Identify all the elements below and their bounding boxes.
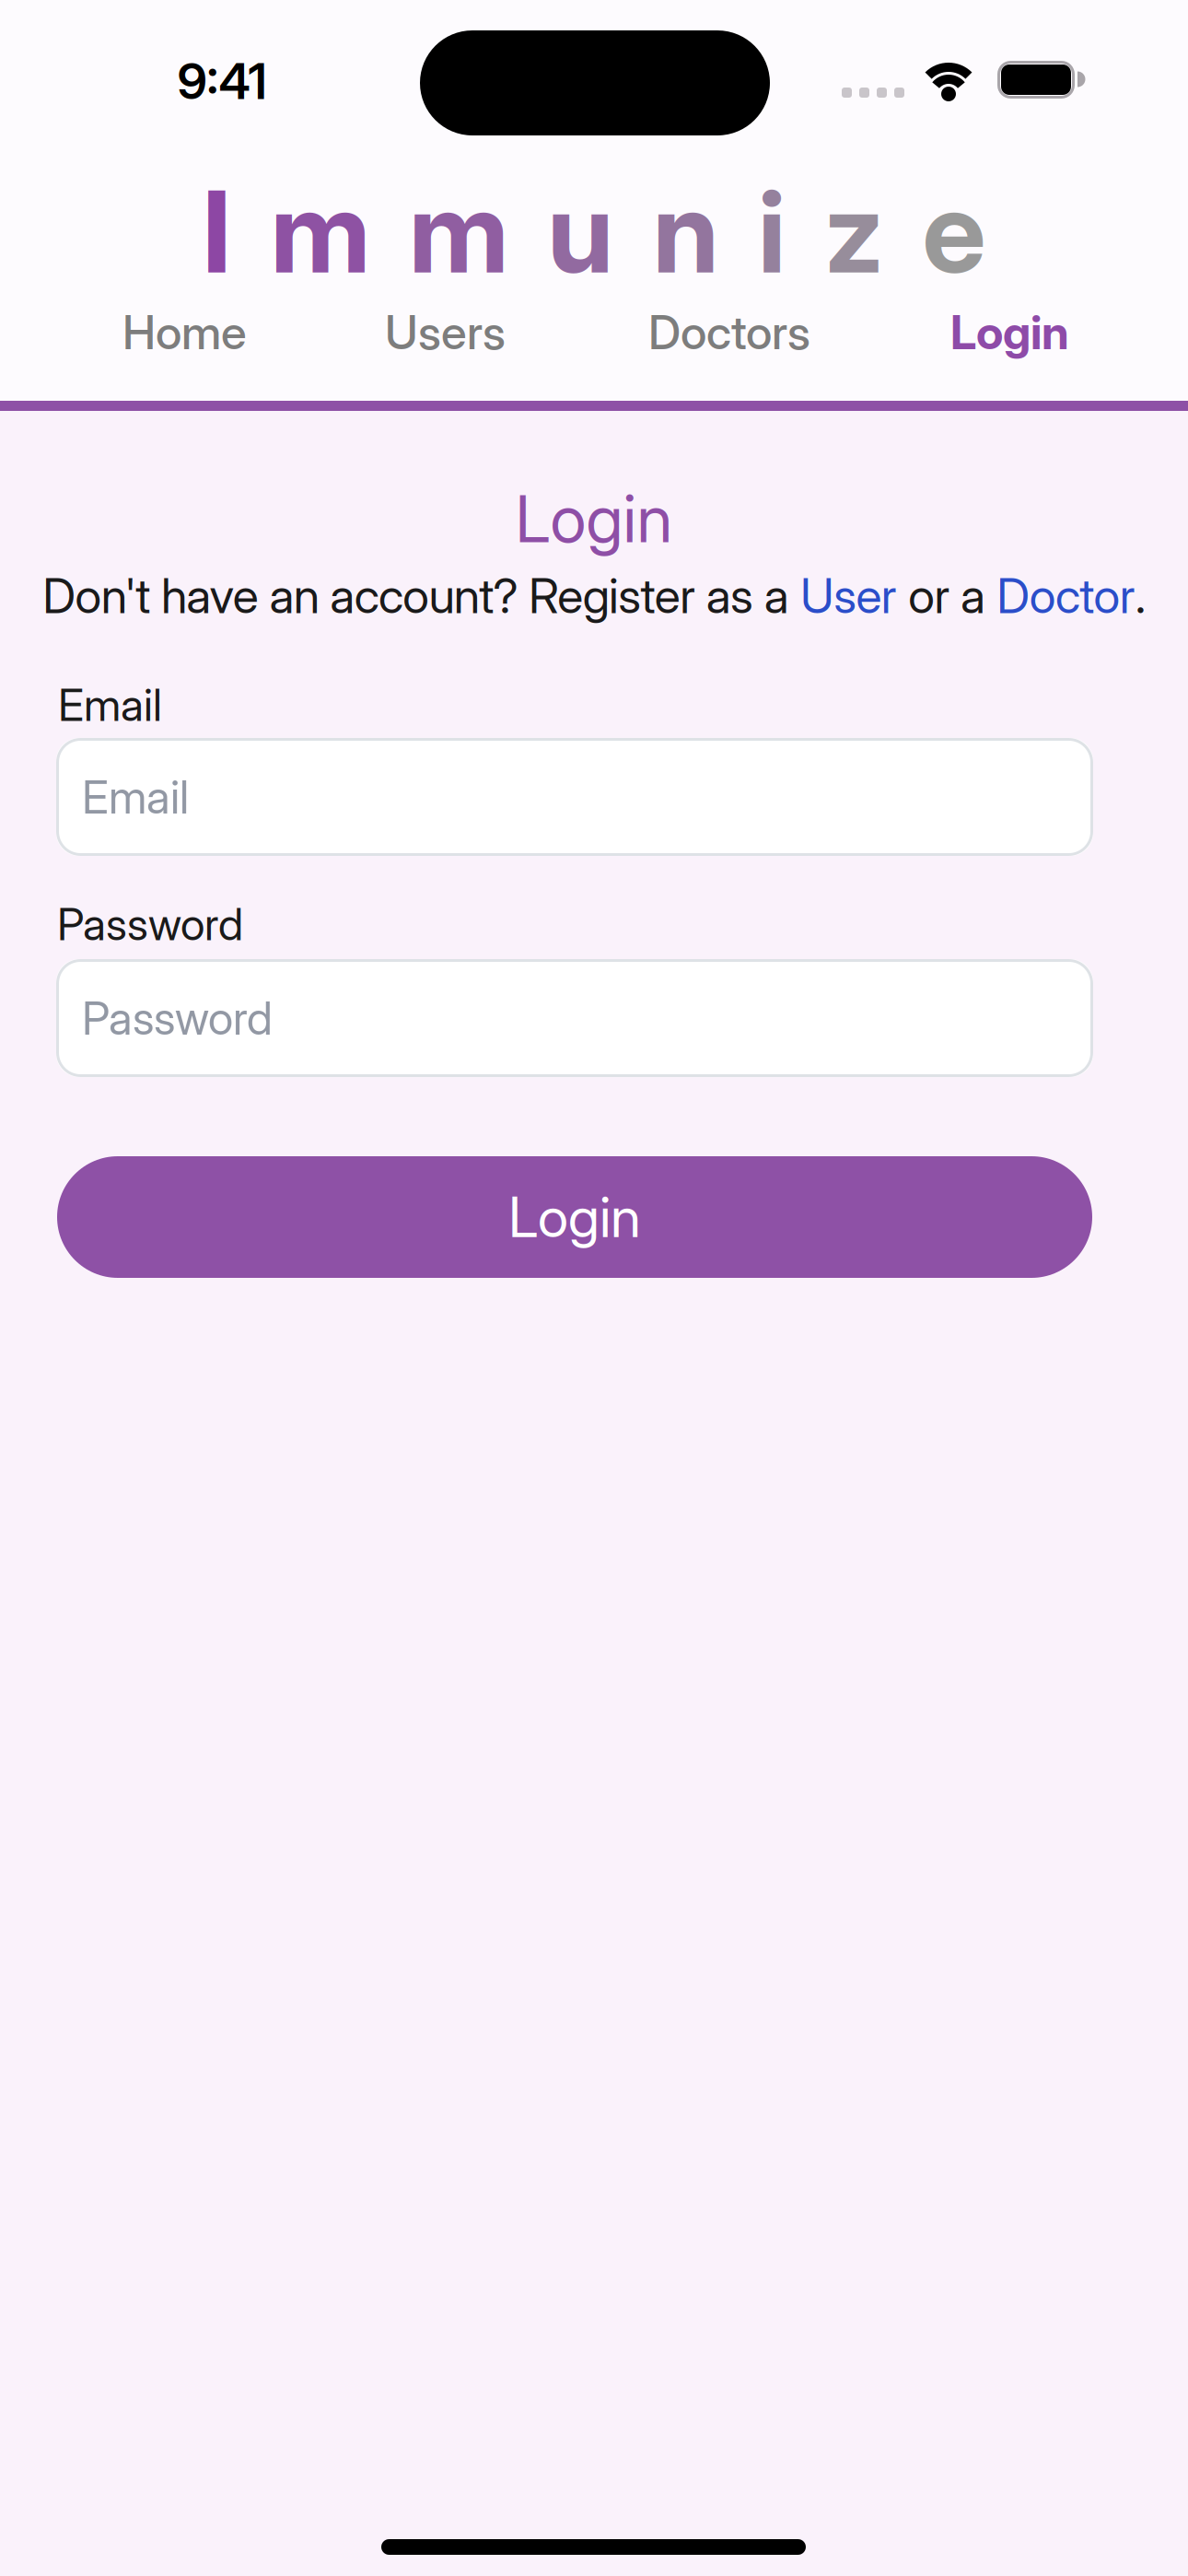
staticText: Home [122, 304, 247, 361]
button[interactable]: Login [57, 1156, 1092, 1278]
staticText: u [547, 163, 614, 300]
staticText: I [202, 163, 232, 300]
staticText: Don't have an account? Register as a [43, 567, 800, 625]
staticText: Doctor [997, 567, 1135, 625]
staticText: z [824, 163, 883, 300]
button[interactable]: Password text field [56, 959, 1093, 1077]
staticText: Password [57, 897, 243, 951]
button[interactable]: Home [122, 304, 247, 361]
staticText: n [653, 163, 719, 300]
button[interactable]: Login [950, 304, 1069, 361]
staticText: Login [515, 479, 673, 558]
staticText: 9:41 [177, 51, 267, 111]
staticText: Email [82, 769, 189, 824]
staticText: Doctors [648, 304, 810, 361]
button[interactable]: Email text field [56, 738, 1093, 856]
staticText: or a [897, 567, 997, 625]
staticText: Users [385, 304, 506, 361]
staticText: i [758, 163, 786, 300]
staticText: e [922, 163, 986, 300]
button[interactable]: User [800, 567, 897, 625]
button[interactable]: Users [385, 304, 506, 361]
staticText: Email [58, 678, 162, 732]
button[interactable]: Doctor [997, 567, 1135, 625]
staticText: Password [82, 991, 273, 1046]
staticText: User [800, 567, 897, 625]
staticText: Login [508, 1184, 641, 1251]
staticText: . [1135, 567, 1145, 625]
staticText: m [409, 163, 508, 300]
button[interactable]: Doctors [648, 304, 810, 361]
staticText: m [271, 163, 370, 300]
staticText: Login [950, 304, 1069, 361]
